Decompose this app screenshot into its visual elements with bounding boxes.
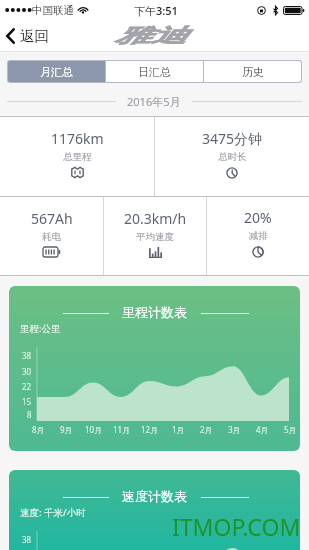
staticText: 22 bbox=[22, 381, 32, 392]
staticText: 总时长 bbox=[218, 151, 247, 163]
staticText: 38 bbox=[22, 534, 32, 545]
staticText: 中国联通 bbox=[32, 4, 74, 17]
button[interactable]: 1176km bbox=[0, 117, 154, 196]
staticText: 平均速度 bbox=[136, 231, 174, 243]
button[interactable]: 返回 bbox=[0, 20, 59, 52]
staticText: 20.3km/h bbox=[124, 209, 187, 228]
staticText: 返回 bbox=[20, 27, 49, 45]
button[interactable]: 20% bbox=[207, 197, 309, 275]
staticText: 速度计数表 bbox=[122, 488, 187, 504]
staticText: 月汇总 bbox=[40, 65, 73, 79]
button[interactable]: 3475分钟 bbox=[155, 117, 309, 196]
staticText: 历史 bbox=[242, 65, 264, 79]
staticText: 12月 bbox=[141, 424, 159, 435]
staticText: 总里程 bbox=[63, 151, 92, 163]
staticText: 3475分钟 bbox=[202, 129, 263, 148]
button[interactable]: 月汇总 bbox=[8, 61, 105, 82]
staticText: 5月 bbox=[284, 424, 297, 435]
staticText: 2月 bbox=[200, 424, 213, 435]
staticText: 10月 bbox=[85, 424, 103, 435]
staticText: 4月 bbox=[256, 424, 269, 435]
button[interactable]: 历史 bbox=[204, 61, 301, 82]
staticText: 减排 bbox=[249, 230, 268, 242]
staticText: 下午3:51 bbox=[134, 3, 178, 18]
staticText: 里程:公里 bbox=[20, 322, 61, 335]
staticText: 11月 bbox=[113, 424, 131, 435]
staticText: ITMOP.COM bbox=[172, 511, 301, 542]
staticText: 3月 bbox=[228, 424, 241, 435]
staticText: 8 bbox=[27, 409, 32, 420]
staticText: 雅迪 bbox=[115, 24, 187, 48]
staticText: 567Ah bbox=[31, 209, 73, 228]
staticText: 38 bbox=[22, 350, 32, 361]
staticText: 耗电 bbox=[42, 231, 61, 243]
staticText: 8月 bbox=[32, 424, 45, 435]
staticText: 2016年5月 bbox=[127, 94, 181, 109]
staticText: 30 bbox=[22, 366, 32, 377]
staticText: 1176km bbox=[51, 129, 104, 148]
button[interactable]: 日汇总 bbox=[106, 61, 203, 82]
staticText: 1月 bbox=[172, 424, 185, 435]
staticText: 20% bbox=[244, 208, 272, 227]
staticText: 速度: 千米/小时 bbox=[20, 506, 86, 519]
staticText: 15 bbox=[22, 396, 32, 407]
button[interactable]: 里程计数表 bbox=[9, 286, 300, 451]
button[interactable]: 速度计数表 bbox=[9, 470, 300, 550]
staticText: 9月 bbox=[60, 424, 73, 435]
staticText: 里程计数表 bbox=[122, 304, 187, 320]
staticText: 日汇总 bbox=[138, 65, 171, 79]
button[interactable]: 567Ah bbox=[0, 197, 103, 275]
button[interactable]: 20.3km/h bbox=[104, 197, 206, 275]
